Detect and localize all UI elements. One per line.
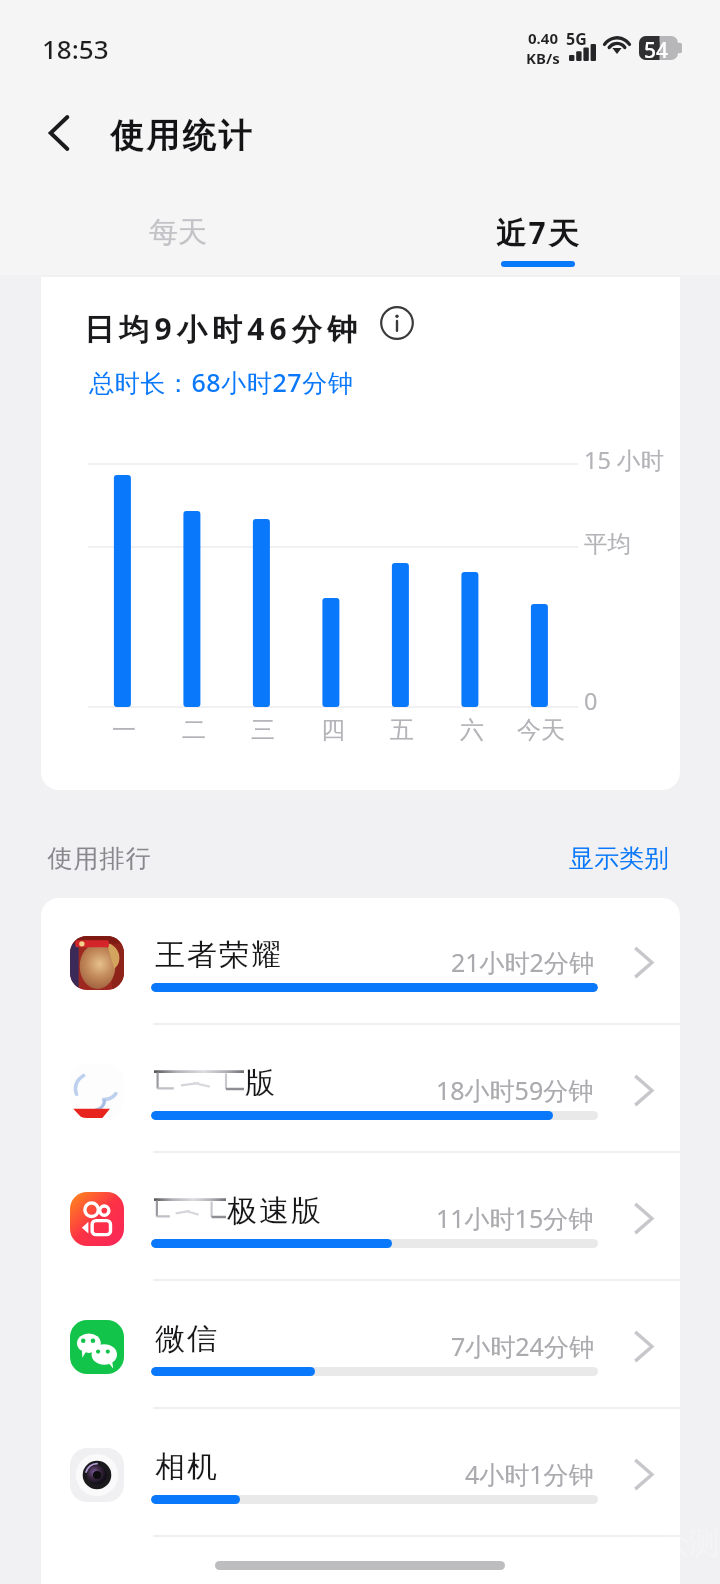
staticText: 每天: [149, 214, 207, 251]
staticText: 众测: [659, 1524, 719, 1562]
staticText: 相机: [154, 1448, 218, 1486]
staticText: 王者荣耀: [154, 936, 282, 974]
staticText: 平均: [584, 529, 631, 559]
button[interactable]: Back: [26, 103, 88, 165]
staticText: 7小时24分钟: [451, 1329, 594, 1363]
staticText: 4小时1分钟: [465, 1457, 594, 1491]
button[interactable]: 王者荣耀: [41, 898, 680, 1023]
button[interactable]: 每天: [90, 196, 266, 268]
staticText: 五: [390, 715, 414, 745]
staticText: 18小时59分钟: [436, 1073, 594, 1107]
staticText: 使用排行: [47, 843, 151, 874]
staticText: 18:53: [42, 31, 109, 66]
staticText: 近7天: [496, 212, 581, 253]
staticText: 今天: [517, 715, 565, 745]
staticText: 15 小时: [584, 444, 664, 476]
button[interactable]: 显示类别: [563, 835, 675, 882]
staticText: 四: [321, 715, 345, 745]
button[interactable]: 相机: [41, 1410, 680, 1535]
staticText: 新浪: [627, 1534, 655, 1552]
button[interactable]: Info: [380, 306, 414, 340]
staticText: 0: [584, 685, 598, 717]
staticText: 5G: [566, 28, 587, 50]
staticText: 日均9小时46分钟: [84, 308, 363, 349]
button[interactable]: 近7天: [450, 196, 626, 268]
staticText: 使用统计: [109, 115, 253, 157]
button[interactable]: 极速版: [41, 1154, 680, 1279]
staticText: 极速版: [226, 1192, 322, 1230]
staticText: 显示类别: [569, 843, 669, 874]
staticText: 21小时2分钟: [451, 945, 594, 979]
staticText: 总时长：68小时27分钟: [89, 365, 354, 399]
staticText: KB/s: [526, 48, 560, 68]
staticText: 二: [182, 715, 206, 745]
button[interactable]: 版: [41, 1026, 680, 1151]
staticText: 微信: [154, 1320, 218, 1358]
staticText: 54: [644, 36, 669, 60]
staticText: 一: [112, 715, 136, 745]
staticText: 0.40: [528, 28, 558, 48]
staticText: 版: [244, 1064, 276, 1102]
button[interactable]: 微信: [41, 1282, 680, 1407]
staticText: 六: [460, 715, 484, 745]
staticText: 三: [251, 715, 275, 745]
staticText: 11小时15分钟: [436, 1201, 594, 1235]
